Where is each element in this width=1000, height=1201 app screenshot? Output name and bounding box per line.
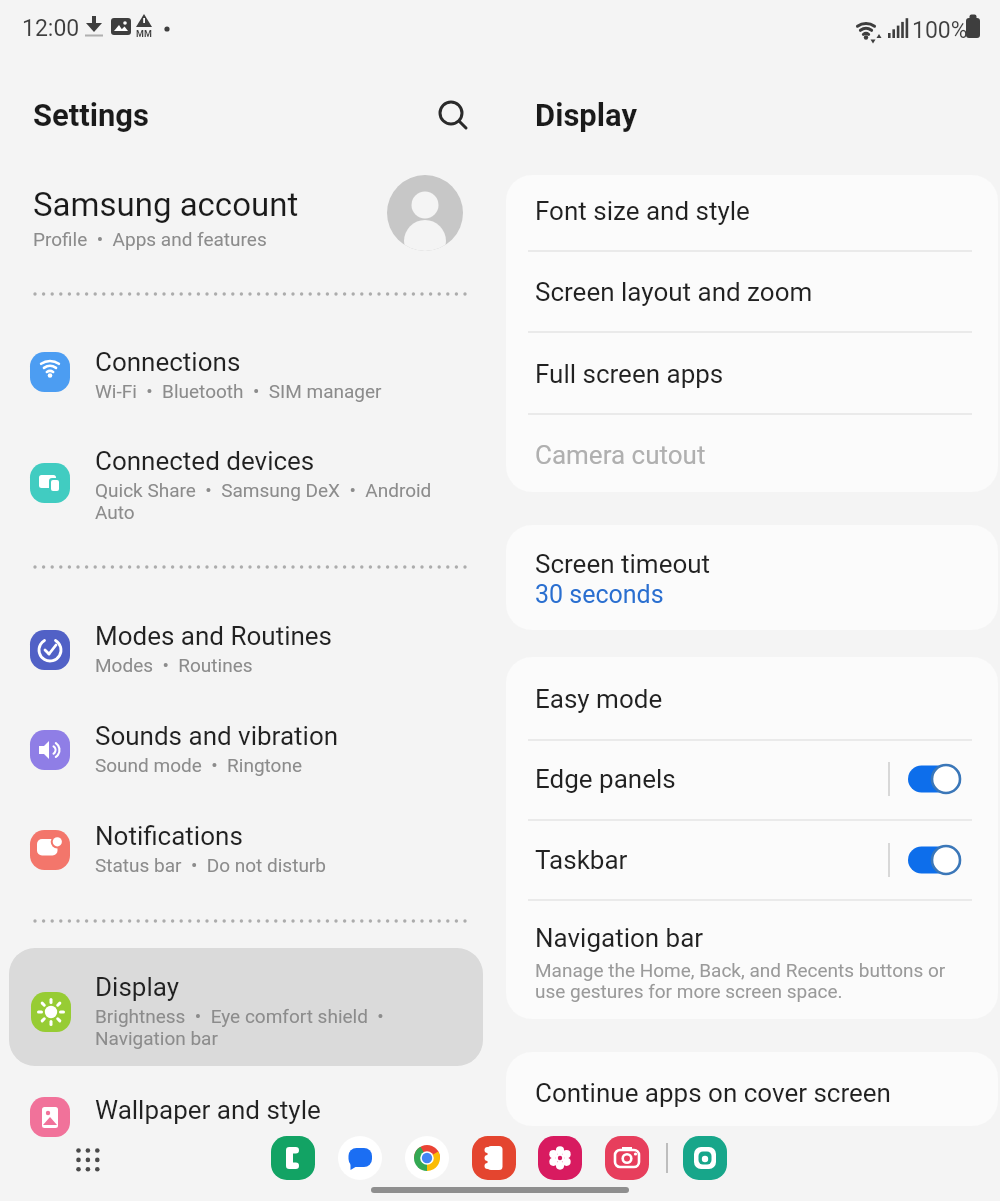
staticText: Screen timeout bbox=[535, 549, 711, 579]
button[interactable] bbox=[136, 14, 156, 34]
button[interactable] bbox=[538, 1136, 582, 1180]
button[interactable] bbox=[30, 630, 70, 670]
button[interactable] bbox=[888, 18, 910, 40]
staticText: Full screen apps bbox=[535, 359, 724, 389]
button[interactable] bbox=[9, 815, 483, 890]
button[interactable] bbox=[74, 1146, 102, 1174]
button[interactable] bbox=[30, 830, 70, 870]
staticText: Edge panels bbox=[535, 764, 676, 794]
staticText: Navigation bar bbox=[535, 923, 704, 953]
button[interactable] bbox=[9, 715, 483, 790]
button[interactable] bbox=[30, 463, 70, 503]
staticText: 30 seconds bbox=[535, 580, 664, 609]
button[interactable] bbox=[506, 739, 998, 819]
button[interactable] bbox=[9, 948, 483, 1066]
staticText: Notifications bbox=[95, 821, 243, 851]
staticText: Continue apps on cover screen bbox=[535, 1078, 891, 1108]
button[interactable] bbox=[164, 26, 170, 32]
button[interactable] bbox=[438, 100, 470, 132]
staticText: Brightness • Eye comfort shield • Naviga… bbox=[95, 1005, 384, 1050]
button[interactable] bbox=[506, 175, 998, 254]
button[interactable] bbox=[506, 525, 998, 630]
staticText: Quick Share • Samsung DeX • Android Auto bbox=[95, 479, 432, 524]
button[interactable] bbox=[30, 730, 70, 770]
button[interactable] bbox=[854, 18, 884, 48]
button[interactable] bbox=[683, 1136, 727, 1180]
staticText: 12:00 bbox=[22, 15, 80, 42]
button[interactable] bbox=[30, 352, 70, 392]
staticText: Sounds and vibration bbox=[95, 721, 339, 751]
button[interactable] bbox=[506, 657, 998, 739]
button[interactable] bbox=[506, 254, 998, 333]
staticText: Font size and style bbox=[535, 196, 750, 226]
staticText: Manage the Home, Back, and Recents butto… bbox=[535, 959, 946, 1003]
staticText: MM bbox=[136, 29, 152, 40]
button[interactable] bbox=[506, 899, 998, 1019]
staticText: 100% bbox=[912, 17, 968, 44]
button[interactable] bbox=[908, 845, 961, 875]
button[interactable] bbox=[9, 335, 483, 410]
staticText: Wallpaper and style bbox=[95, 1095, 321, 1125]
staticText: Samsung account bbox=[33, 185, 299, 224]
staticText: Display bbox=[535, 97, 637, 133]
button[interactable] bbox=[605, 1136, 649, 1180]
button[interactable] bbox=[31, 992, 71, 1032]
staticText: Settings bbox=[33, 97, 150, 133]
staticText: Modes • Routines bbox=[95, 654, 253, 676]
button[interactable] bbox=[9, 615, 483, 690]
staticText: Screen layout and zoom bbox=[535, 277, 813, 307]
staticText: Sound mode • Ringtone bbox=[95, 754, 302, 776]
staticText: Easy mode bbox=[535, 684, 663, 714]
staticText: Display bbox=[95, 972, 179, 1002]
staticText: Wi-Fi • Bluetooth • SIM manager bbox=[95, 380, 382, 402]
button[interactable] bbox=[9, 440, 483, 535]
button[interactable] bbox=[506, 1052, 998, 1126]
button[interactable] bbox=[84, 16, 104, 36]
staticText: Connected devices bbox=[95, 446, 315, 476]
button[interactable] bbox=[111, 18, 131, 38]
staticText: Status bar • Do not disturb bbox=[95, 854, 326, 876]
staticText: Camera cutout bbox=[535, 440, 706, 470]
button[interactable] bbox=[405, 1136, 449, 1180]
button[interactable] bbox=[908, 764, 961, 794]
button[interactable] bbox=[963, 13, 985, 35]
staticText: Connections bbox=[95, 347, 241, 377]
staticText: Taskbar bbox=[535, 845, 628, 875]
button[interactable] bbox=[472, 1136, 516, 1180]
button[interactable] bbox=[338, 1136, 382, 1180]
staticText: Profile • Apps and features bbox=[33, 228, 267, 250]
staticText: Modes and Routines bbox=[95, 621, 333, 651]
button[interactable] bbox=[271, 1136, 315, 1180]
button[interactable] bbox=[506, 335, 998, 414]
button[interactable]: Wallpaper and style bbox=[0, 1080, 500, 1133]
button[interactable] bbox=[506, 819, 998, 899]
button[interactable] bbox=[20, 170, 480, 266]
